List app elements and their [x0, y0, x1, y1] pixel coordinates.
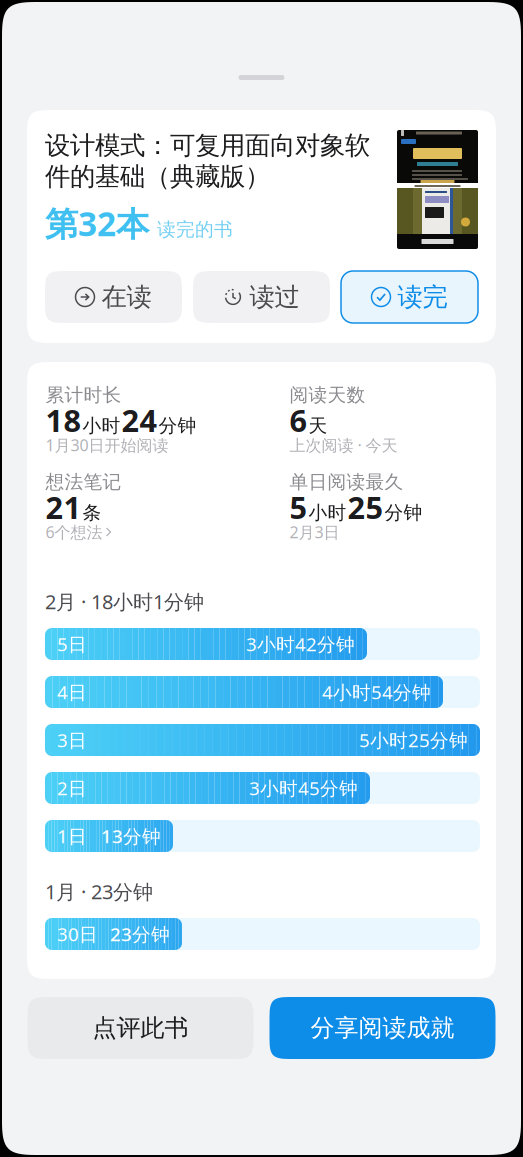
- staticText: 18: [45, 400, 81, 440]
- staticText: 小时: [308, 501, 346, 524]
- staticText: 2月3日: [289, 521, 339, 543]
- staticText: 3日: [57, 728, 87, 752]
- staticText: 6: [289, 400, 307, 440]
- staticText: 5日: [57, 632, 87, 656]
- staticText: 点评此书: [92, 1013, 188, 1043]
- staticText: 30日: [57, 922, 98, 946]
- button[interactable]: 读过: [193, 271, 330, 323]
- button[interactable]: 分享阅读成就: [269, 997, 495, 1059]
- staticText: 分钟: [158, 414, 196, 437]
- staticText: 2月 · 18小时1分钟: [45, 588, 204, 615]
- staticText: 4日: [57, 680, 87, 704]
- staticText: 设计模式：可复用面向对象软件的基础（典藏版）: [45, 130, 370, 192]
- staticText: 第32本: [45, 201, 149, 245]
- button[interactable]: 读完: [341, 271, 478, 323]
- staticText: 1日: [57, 824, 87, 848]
- staticText: 25: [347, 487, 383, 527]
- staticText: 1月 · 23分钟: [45, 878, 153, 905]
- staticText: 单日阅读最久: [289, 470, 403, 493]
- button[interactable]: 在读: [45, 271, 182, 323]
- staticText: 3小时42分钟: [246, 632, 355, 656]
- staticText: 天: [308, 414, 327, 437]
- staticText: 累计时长: [45, 383, 121, 406]
- staticText: 13分钟: [101, 824, 161, 848]
- staticText: 读完的书: [157, 218, 233, 241]
- staticText: 条: [82, 501, 101, 524]
- staticText: 1月30日开始阅读: [45, 434, 168, 456]
- staticText: 阅读天数: [289, 383, 365, 406]
- staticText: 分享阅读成就: [310, 1013, 454, 1043]
- staticText: 在读: [101, 281, 151, 312]
- staticText: 读完: [397, 281, 447, 312]
- staticText: 2日: [57, 776, 87, 800]
- staticText: 23分钟: [110, 922, 170, 946]
- staticText: 小时: [82, 414, 120, 437]
- staticText: 分钟: [384, 501, 422, 524]
- staticText: 24: [121, 400, 157, 440]
- staticText: 21: [45, 487, 81, 527]
- staticText: 6个想法: [45, 521, 102, 543]
- staticText: 读过: [249, 281, 299, 312]
- staticText: 想法笔记: [45, 470, 121, 493]
- staticText: 上次阅读 · 今天: [289, 434, 397, 456]
- staticText: 5小时25分钟: [359, 728, 468, 752]
- staticText: 4小时54分钟: [322, 680, 431, 704]
- button[interactable]: 点评此书: [27, 997, 253, 1059]
- staticText: 5: [289, 487, 307, 527]
- staticText: 3小时45分钟: [249, 776, 358, 800]
